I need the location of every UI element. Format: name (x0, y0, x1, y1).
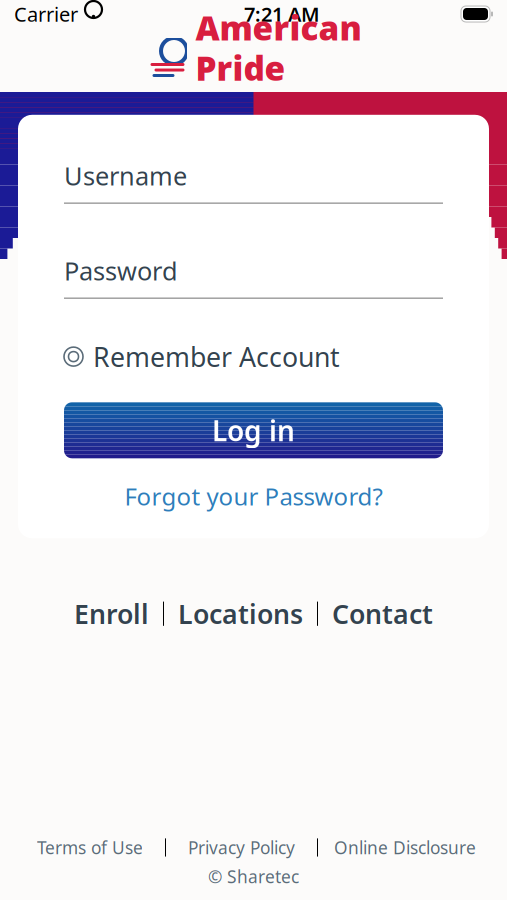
staticText: Log in (212, 412, 295, 449)
button[interactable]: Remember Account (64, 339, 443, 374)
staticText: © Sharetec (208, 865, 299, 888)
staticText: Remember Account (93, 339, 340, 374)
staticText: Pride (195, 46, 285, 90)
staticText: Locations (178, 596, 303, 631)
staticText: Forgot your Password? (124, 480, 382, 512)
button[interactable]: Privacy Policy (166, 836, 317, 859)
staticText: 7:21 AM (244, 1, 320, 27)
staticText: American (195, 5, 361, 50)
button[interactable]: Locations (164, 592, 317, 635)
button[interactable]: Enroll (60, 592, 163, 635)
staticText: Version: 2.6.0.1 (191, 111, 316, 134)
staticText: Carrier (14, 1, 78, 27)
staticText: Enroll (74, 596, 149, 631)
staticText: Online Disclosure (334, 836, 476, 859)
staticText: Username (64, 159, 187, 192)
button[interactable]: Terms of Use (15, 836, 165, 859)
staticText: Terms of Use (37, 836, 143, 859)
button[interactable]: Online Disclosure (318, 836, 492, 859)
button[interactable]: Forgot your Password? (64, 476, 443, 516)
staticText: Credit Union (195, 88, 317, 113)
staticText: Contact (332, 596, 433, 631)
staticText: Password (64, 254, 178, 287)
button[interactable]: Log in (64, 402, 443, 458)
staticText: Privacy Policy (188, 836, 295, 859)
button[interactable]: Contact (318, 592, 447, 635)
